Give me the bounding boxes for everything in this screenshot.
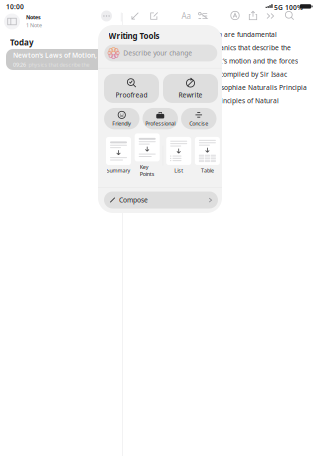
staticText: Notes (26, 14, 41, 21)
staticText: 5G 100% (274, 3, 303, 12)
button[interactable]: Toolbar item (229, 10, 240, 21)
button[interactable]: Friendly (104, 108, 139, 129)
staticText: Concise (189, 120, 208, 127)
staticText: List (174, 167, 183, 174)
staticText: Aa (181, 11, 190, 21)
button[interactable]: Newton's Laws of Motion, (6, 49, 118, 70)
button[interactable]: Summary (106, 137, 131, 174)
button[interactable]: Compose (104, 191, 218, 208)
staticText: Proofread (115, 90, 147, 99)
staticText: Newton's laws of motion, which are funda… (124, 30, 277, 39)
button[interactable]: Toolbar item (101, 10, 112, 21)
staticText: Summary (106, 167, 130, 174)
button[interactable]: Toolbar item (148, 10, 159, 21)
button[interactable]: Toolbar item (284, 10, 295, 21)
button[interactable]: Toolbar item (129, 10, 140, 21)
staticText: physics that describe the (28, 61, 89, 68)
button[interactable]: Key Points (135, 133, 160, 178)
button[interactable]: Table (195, 137, 220, 174)
button[interactable]: Toggle sidebar (4, 13, 20, 29)
staticText: Key Points (140, 163, 155, 178)
button[interactable]: Toolbar item (180, 10, 191, 21)
button[interactable]: Professional (142, 108, 178, 129)
staticText: 1 Note (26, 22, 42, 29)
staticText: Table (201, 167, 214, 174)
staticText: 09:26 (13, 61, 26, 68)
staticText: Newton in his 1687 work Philosophiae Nat… (124, 83, 307, 92)
staticText: Mathematica (Mathematical Principles of … (124, 96, 279, 105)
staticText: relationship between an object's motion … (124, 56, 298, 65)
staticText: Newton's Laws of Motion, (13, 51, 97, 60)
button[interactable]: Toolbar item (265, 10, 276, 21)
button[interactable]: Rewrite (163, 74, 218, 103)
staticText: Today (10, 37, 34, 48)
staticText: Writing Tools (108, 30, 159, 41)
staticText: Rewrite (178, 90, 202, 99)
button[interactable]: Proofread (104, 74, 159, 103)
button[interactable]: Toolbar item (247, 10, 258, 21)
staticText: Philosophy). (124, 109, 162, 118)
staticText: Friendly (112, 120, 131, 127)
button[interactable]: List (166, 137, 191, 174)
staticText: Compose (119, 196, 148, 204)
staticText: acting upon it. They were first compiled… (124, 70, 287, 79)
button[interactable]: Concise (181, 108, 216, 129)
staticText: physical laws of classical mechanics tha… (124, 43, 291, 52)
staticText: Describe your change (123, 49, 192, 57)
staticText: 10:00 (6, 2, 24, 11)
button[interactable]: Describe your change (104, 45, 217, 61)
staticText: Professional (145, 120, 175, 127)
button[interactable]: Toolbar item (197, 10, 208, 21)
